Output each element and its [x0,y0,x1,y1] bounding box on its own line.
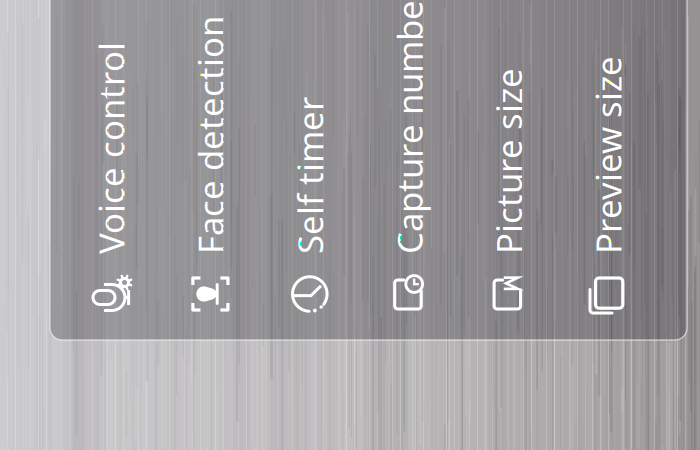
staticText: Picture size [309,31,495,77]
staticText: Face detection [10,31,248,77]
button[interactable]: Capture number [0,0,700,450]
button[interactable]: Self timer [0,0,700,450]
staticText: Capture number [209,31,477,77]
button[interactable]: Preview size [0,0,700,450]
staticText: Self timer [110,31,267,77]
button[interactable]: Voice control [0,0,700,450]
button[interactable]: Face detection [0,0,700,450]
staticText: Preview size [408,31,606,77]
button[interactable]: Picture size [0,0,700,450]
staticText: Voice control [0,31,123,77]
